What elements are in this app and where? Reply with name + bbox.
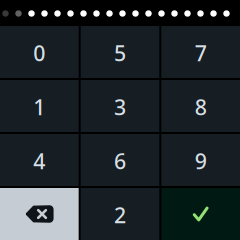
button[interactable]: 2 <box>81 188 159 240</box>
staticText: 0 <box>33 39 45 67</box>
button[interactable]: 6 <box>81 134 159 186</box>
staticText: 7 <box>195 39 207 67</box>
staticText: 8 <box>195 93 207 121</box>
button[interactable]: 1 <box>0 80 79 132</box>
staticText: 3 <box>114 93 126 121</box>
staticText: 1 <box>33 93 45 121</box>
button[interactable]: 8 <box>161 80 240 132</box>
button[interactable]: Confirm passcode <box>161 188 240 240</box>
staticText: 5 <box>114 39 126 67</box>
button[interactable]: 5 <box>81 26 159 78</box>
staticText: 2 <box>114 201 126 229</box>
staticText: 4 <box>33 147 45 175</box>
button[interactable]: 7 <box>161 26 240 78</box>
button[interactable]: Delete <box>0 188 79 240</box>
staticText: 9 <box>195 147 207 175</box>
button[interactable]: 4 <box>0 134 79 186</box>
button[interactable]: 0 <box>0 26 79 78</box>
staticText: 6 <box>114 147 126 175</box>
button[interactable]: 3 <box>81 80 159 132</box>
button[interactable]: 9 <box>161 134 240 186</box>
